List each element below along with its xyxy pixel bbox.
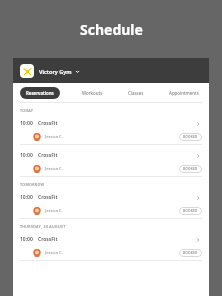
staticText: BOOKED: [183, 209, 198, 213]
button[interactable]: BOOKED: [179, 249, 202, 257]
staticText: TOMORROW: [20, 182, 45, 187]
staticText: 10:00: [20, 236, 38, 243]
staticText: BOOKED: [183, 167, 198, 171]
other: Open details: [194, 194, 202, 202]
staticText: CrossFit: [38, 120, 58, 127]
staticText: Victory Gym: [39, 68, 72, 75]
other: Open details: [194, 236, 202, 244]
button[interactable]: BOOKED: [179, 165, 202, 173]
button[interactable]: Reservations: [20, 87, 60, 99]
staticText: CrossFit: [38, 152, 58, 159]
staticText: TODAY: [20, 108, 34, 113]
staticText: 10:00: [20, 120, 38, 127]
staticText: Jessica C.: [45, 166, 63, 172]
staticText: Classes: [128, 90, 144, 96]
staticText: BOOKED: [183, 251, 198, 255]
button[interactable]: BOOKED: [179, 207, 202, 215]
staticText: Reservations: [26, 90, 54, 96]
button[interactable]: 10:00: [13, 117, 209, 145]
other: Open details: [194, 120, 202, 128]
button[interactable]: Victory Gym: [18, 62, 82, 80]
staticText: Appointments: [169, 90, 199, 96]
staticText: CrossFit: [38, 194, 58, 201]
staticText: BOOKED: [183, 135, 198, 139]
staticText: Workouts: [82, 90, 103, 96]
staticText: Jessica C.: [45, 250, 63, 256]
button[interactable]: 10:00: [13, 233, 209, 261]
staticText: Schedule: [80, 20, 143, 39]
button[interactable]: 10:00: [13, 149, 209, 177]
other: Open details: [194, 152, 202, 160]
staticText: 10:00: [20, 194, 38, 201]
button[interactable]: BOOKED: [179, 133, 202, 141]
staticText: 10:00: [20, 152, 38, 159]
button[interactable]: Appointments: [166, 87, 202, 99]
button[interactable]: Workouts: [79, 87, 106, 99]
staticText: THURSDAY, 24 AUGUST: [20, 224, 66, 229]
staticText: CrossFit: [38, 236, 58, 243]
staticText: Jessica C.: [45, 134, 63, 140]
button[interactable]: 10:00: [13, 191, 209, 219]
staticText: Jessica C.: [45, 208, 63, 214]
button[interactable]: Classes: [125, 87, 147, 99]
